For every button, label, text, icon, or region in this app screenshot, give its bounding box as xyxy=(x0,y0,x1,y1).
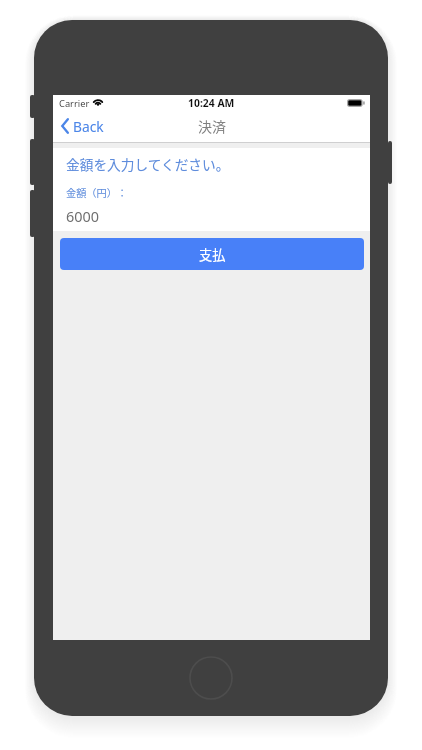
button[interactable]: Back xyxy=(53,110,114,142)
staticText: 金額（円）： xyxy=(66,185,128,200)
staticText: 6000 xyxy=(66,207,99,227)
staticText: 金額を入力してください。 xyxy=(66,154,230,174)
button[interactable]: 支払 xyxy=(60,238,364,270)
staticText: Back xyxy=(73,117,104,136)
staticText: 決済 xyxy=(198,116,226,136)
staticText: 支払 xyxy=(199,245,226,264)
staticText: 10:24 AM xyxy=(188,96,235,110)
staticText: Carrier xyxy=(59,97,90,110)
button[interactable]: Amount in yen, 6000 xyxy=(53,179,370,231)
